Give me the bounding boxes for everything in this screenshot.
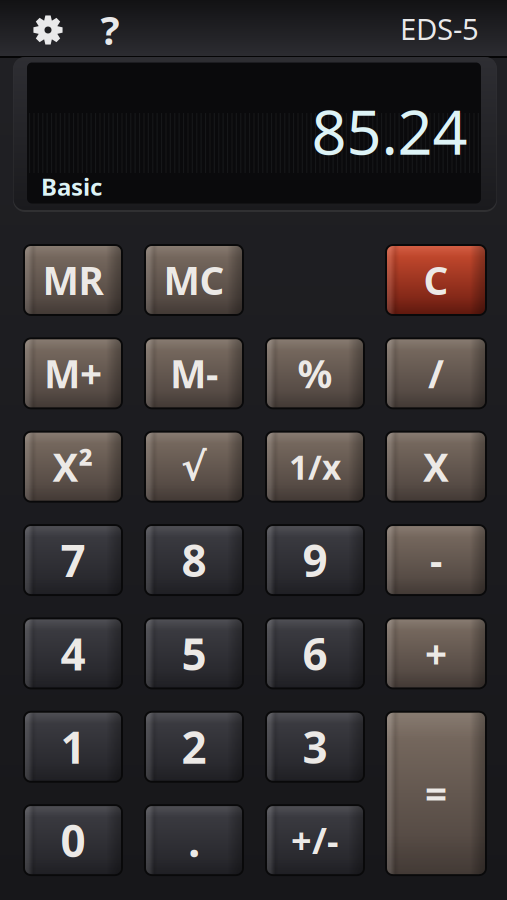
button[interactable]: Settings — [26, 8, 70, 52]
button[interactable]: √ — [144, 431, 244, 503]
button[interactable]: M+ — [23, 337, 123, 409]
staticText: . — [188, 811, 200, 869]
staticText: EDS-5 — [400, 9, 479, 48]
staticText: 3 — [302, 717, 327, 776]
button[interactable]: Help — [90, 7, 130, 51]
button[interactable]: 5 — [144, 617, 244, 689]
staticText: 4 — [60, 624, 85, 683]
button[interactable]: +/- — [265, 804, 365, 876]
button[interactable]: 3 — [265, 711, 365, 783]
staticText: 8 — [181, 531, 206, 589]
button[interactable]: + — [385, 617, 487, 689]
staticText: - — [430, 534, 442, 586]
staticText: X — [423, 441, 449, 492]
staticText: +/- — [291, 816, 339, 864]
staticText: MC — [163, 254, 224, 306]
staticText: 7 — [60, 531, 85, 589]
button[interactable]: - — [385, 524, 487, 596]
button[interactable]: % — [265, 337, 365, 409]
staticText: MR — [42, 254, 103, 306]
staticText: 0 — [60, 811, 85, 869]
button[interactable]: = — [385, 711, 487, 876]
staticText: 1/x — [289, 445, 341, 489]
button[interactable]: C — [385, 244, 487, 316]
button[interactable]: X — [385, 431, 487, 503]
staticText: M- — [170, 348, 218, 399]
button[interactable]: 4 — [23, 617, 123, 689]
staticText: C — [423, 254, 448, 306]
staticText: X² — [52, 441, 93, 492]
button[interactable]: / — [385, 337, 487, 409]
button[interactable]: 1 — [23, 711, 123, 783]
button[interactable]: M- — [144, 337, 244, 409]
button[interactable]: 0 — [23, 804, 123, 876]
button[interactable]: MC — [144, 244, 244, 316]
staticText: √ — [181, 445, 207, 489]
staticText: M+ — [44, 348, 102, 399]
button[interactable]: 7 — [23, 524, 123, 596]
staticText: 6 — [302, 624, 327, 683]
button[interactable]: 9 — [265, 524, 365, 596]
staticText: Basic — [41, 171, 102, 202]
staticText: 5 — [181, 624, 206, 683]
staticText: ? — [100, 3, 119, 56]
button[interactable]: 2 — [144, 711, 244, 783]
staticText: 85.24 — [311, 90, 467, 172]
button[interactable]: 1/x — [265, 431, 365, 503]
staticText: / — [428, 348, 444, 399]
button[interactable]: . — [144, 804, 244, 876]
button[interactable]: 8 — [144, 524, 244, 596]
staticText: % — [297, 348, 332, 399]
button[interactable]: MR — [23, 244, 123, 316]
staticText: 1 — [60, 717, 85, 776]
button[interactable]: X² — [23, 431, 123, 503]
button[interactable]: 6 — [265, 617, 365, 689]
staticText: 2 — [181, 717, 206, 776]
staticText: 9 — [302, 531, 327, 589]
staticText: + — [425, 628, 447, 679]
staticText: = — [425, 768, 447, 819]
